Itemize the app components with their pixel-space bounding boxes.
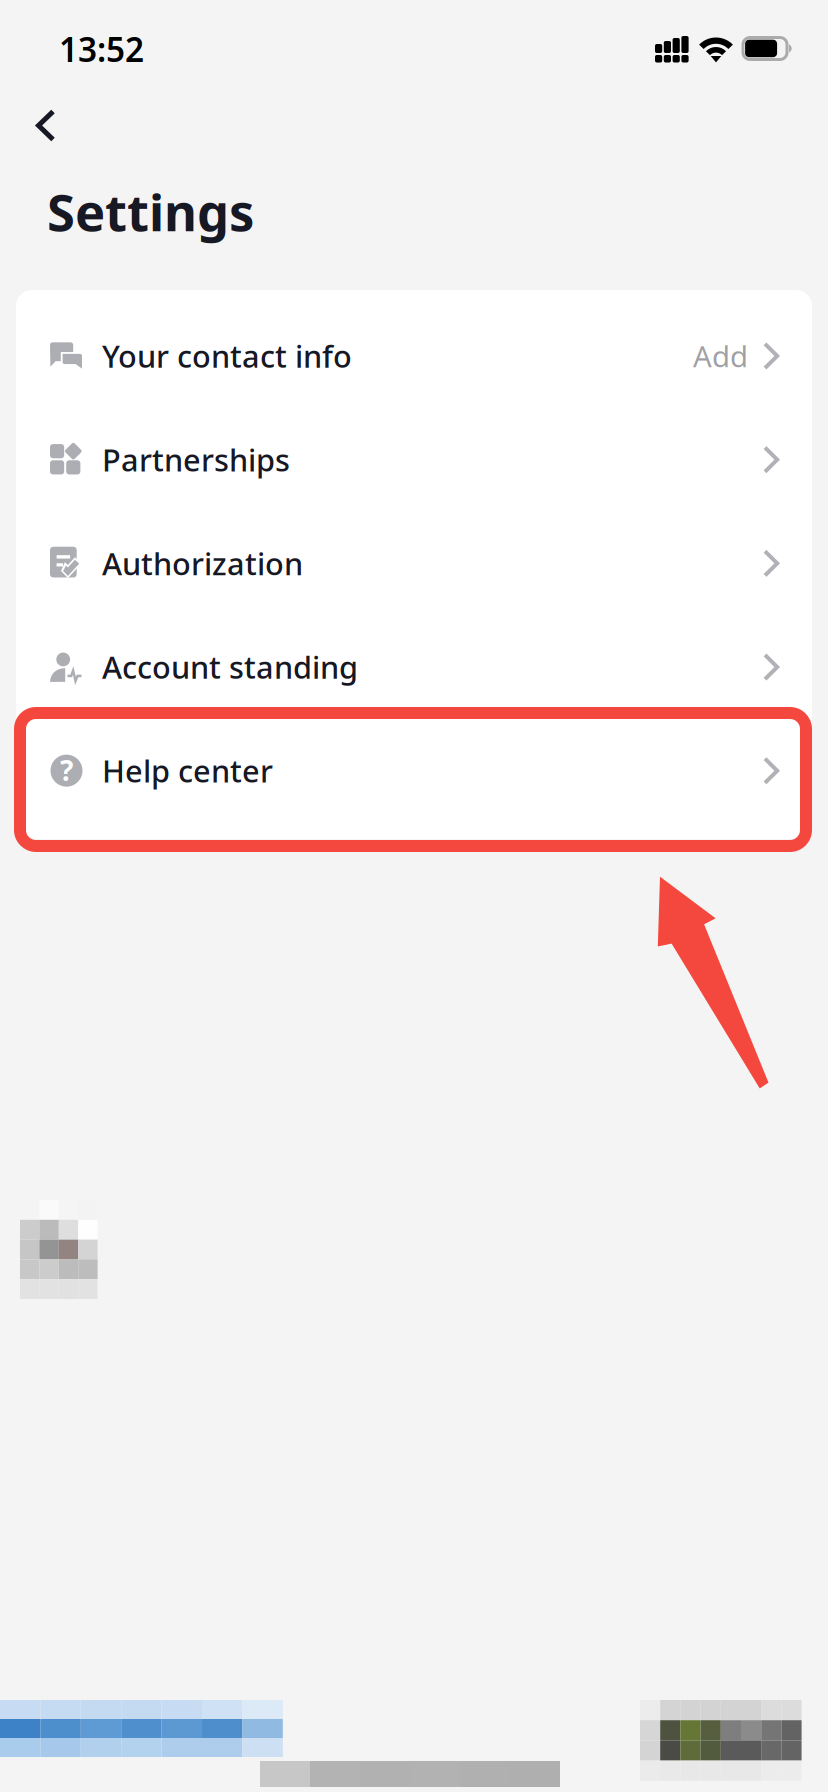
staticText: Partnerships [102,439,290,480]
staticText: ? [60,752,73,789]
staticText: Help center [102,750,273,791]
staticText: Add [693,336,748,375]
staticText: Settings [47,178,254,245]
staticText: Authorization [102,543,303,584]
staticText: Your contact info [102,335,352,376]
button[interactable]: Partnerships [16,408,812,511]
staticText: Account standing [102,647,358,687]
button[interactable]: ? [16,719,812,822]
button[interactable]: Authorization [16,511,812,615]
button[interactable]: Your contact info [16,304,812,408]
staticText: 13:52 [59,27,144,71]
button[interactable]: Back [22,95,68,156]
button[interactable]: Account standing [16,615,812,719]
